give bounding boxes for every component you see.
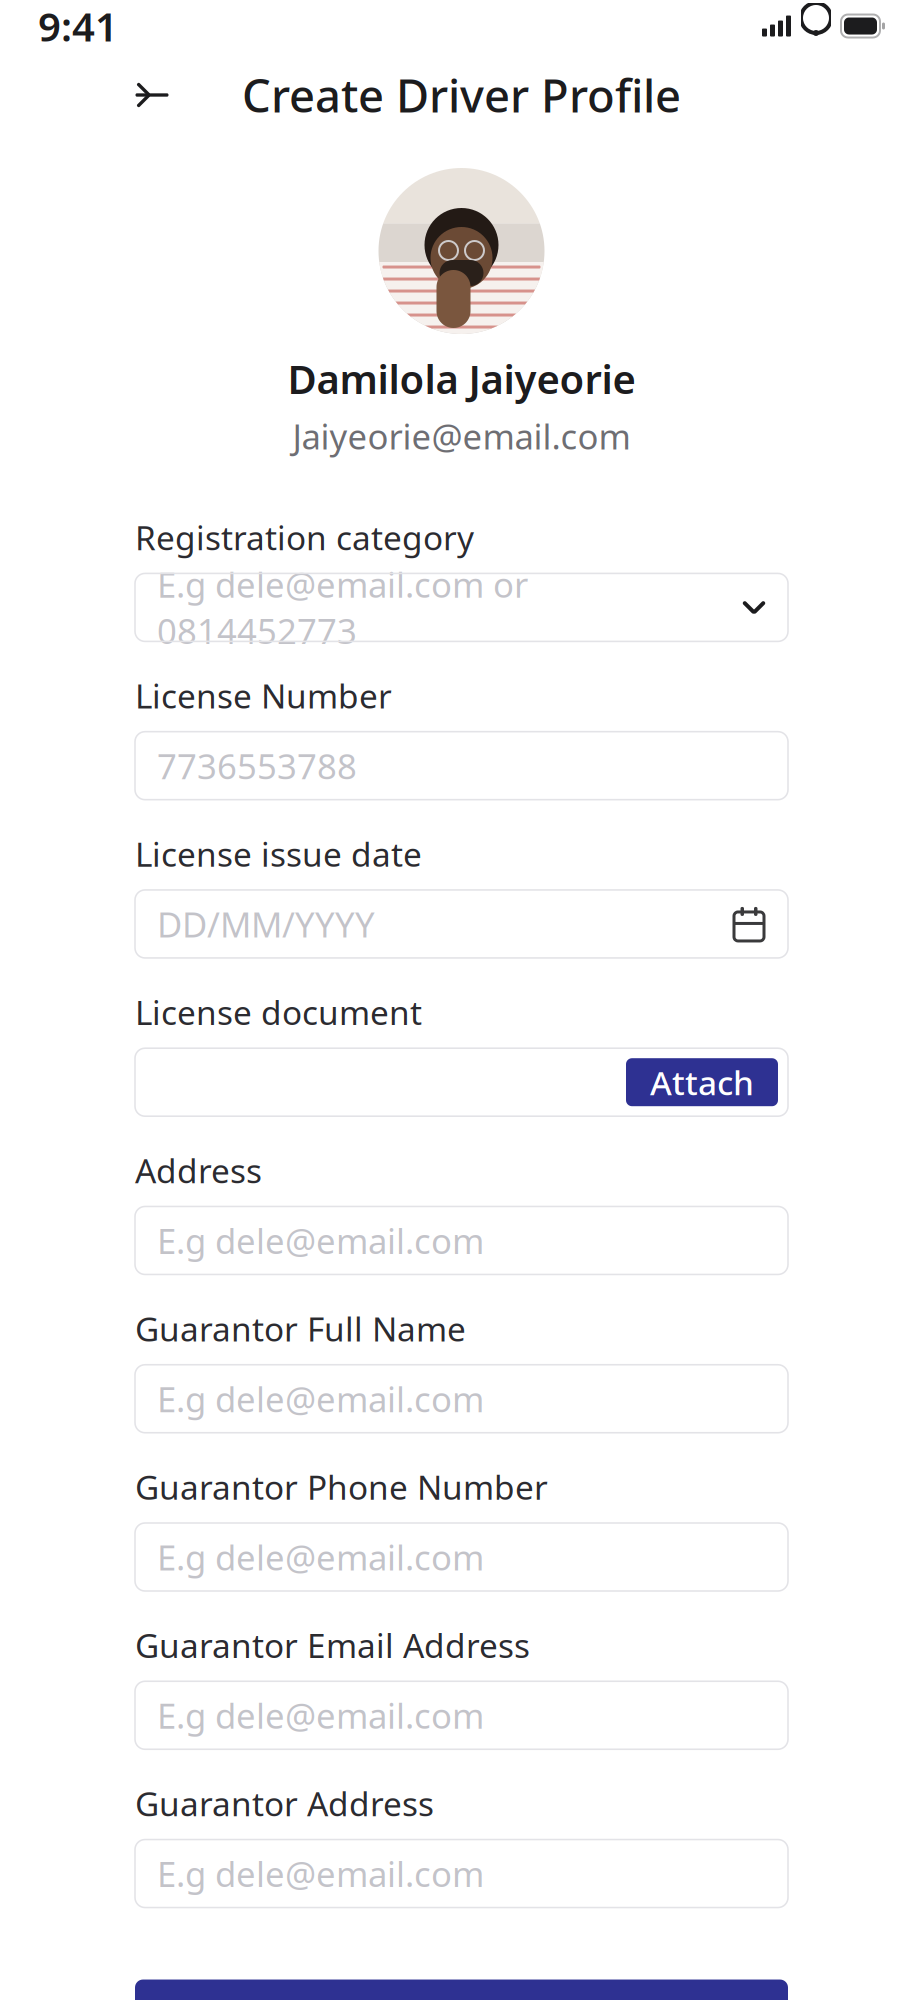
button[interactable]: DD/MM/YYYY xyxy=(135,890,788,958)
button[interactable]: E.g dele@email.com xyxy=(135,1365,788,1433)
staticText: E.g dele@email.com xyxy=(157,1217,484,1263)
staticText: Jaiyeorie@email.com xyxy=(292,413,630,459)
staticText: License issue date xyxy=(135,832,422,876)
staticText: 9:41 xyxy=(38,0,118,52)
staticText: E.g dele@email.com xyxy=(157,1692,484,1738)
button[interactable]: E.g dele@email.com xyxy=(135,1206,788,1274)
button[interactable]: E.g dele@email.com xyxy=(135,1523,788,1591)
staticText: License document xyxy=(135,990,422,1034)
staticText: Attach xyxy=(650,1060,754,1104)
staticText: E.g dele@email.com xyxy=(157,1534,484,1580)
button[interactable]: Back xyxy=(122,67,182,123)
button[interactable]: E.g dele@email.com xyxy=(135,1681,788,1749)
button[interactable]: 7736553788 xyxy=(135,732,788,800)
staticText: Guarantor Full Name xyxy=(135,1306,466,1351)
button[interactable]: Attach xyxy=(626,1058,778,1106)
staticText: DD/MM/YYYY xyxy=(157,901,375,947)
staticText: Damilola Jaiyeorie xyxy=(287,352,635,405)
staticText: Registration category xyxy=(135,515,474,559)
button[interactable]: E.g dele@email.com xyxy=(135,1839,788,1907)
staticText: Guarantor Email Address xyxy=(135,1623,530,1667)
staticText: License Number xyxy=(135,673,392,718)
staticText: Guarantor Address xyxy=(135,1781,434,1826)
staticText: E.g dele@email.com xyxy=(157,1850,484,1896)
button[interactable]: E.g dele@email.com or 0814452773 xyxy=(135,573,788,641)
staticText: Address xyxy=(135,1148,262,1192)
staticText: Create Driver Profile xyxy=(242,65,681,125)
staticText: 7736553788 xyxy=(157,743,357,789)
staticText: Guarantor Phone Number xyxy=(135,1465,548,1509)
button[interactable]: Create Profile xyxy=(135,1979,788,2000)
staticText: E.g dele@email.com xyxy=(157,1376,484,1422)
staticText: E.g dele@email.com or 0814452773 xyxy=(157,561,528,653)
